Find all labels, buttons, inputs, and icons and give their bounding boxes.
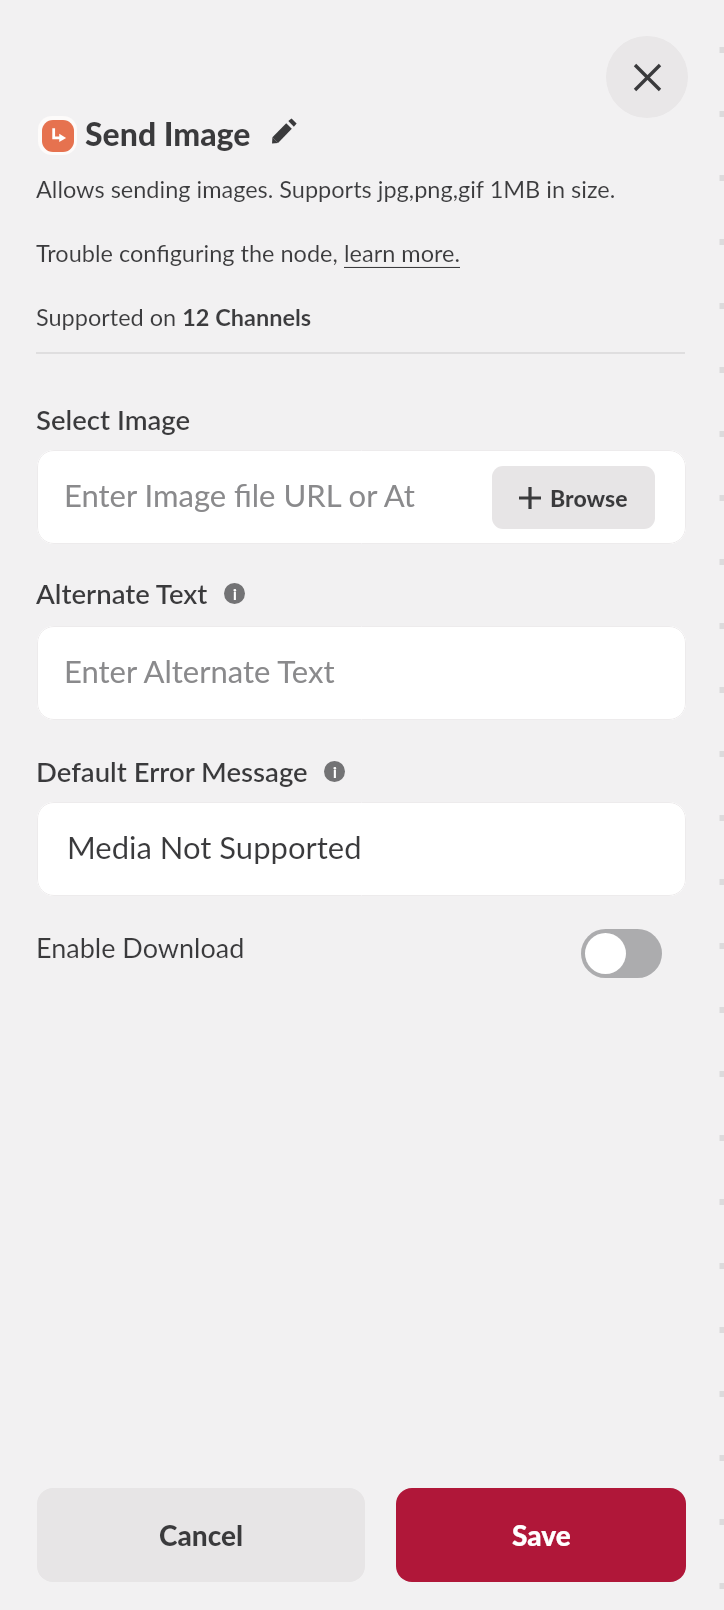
staticText: Default Error Message bbox=[36, 755, 308, 788]
staticText: Supported on 12 Channels bbox=[36, 303, 312, 331]
staticText: Save bbox=[512, 1518, 571, 1552]
staticText: Cancel bbox=[159, 1518, 244, 1552]
staticText: Browse bbox=[550, 484, 628, 512]
staticText: Send Image bbox=[85, 114, 251, 152]
staticText: Media Not Supported bbox=[67, 828, 362, 865]
button[interactable]: Enter Alternate Text bbox=[37, 626, 686, 720]
button[interactable]: Enter Image file URL or At bbox=[37, 450, 686, 544]
staticText: Enable Download bbox=[36, 931, 245, 963]
button[interactable]: Enable Download bbox=[581, 929, 662, 978]
button[interactable]: Close bbox=[606, 36, 688, 118]
staticText: Alternate Text bbox=[36, 577, 208, 610]
button[interactable]: Cancel bbox=[37, 1488, 365, 1582]
staticText: Select Image bbox=[36, 403, 191, 436]
staticText: Trouble configuring the node, bbox=[36, 239, 344, 267]
button[interactable]: learn more. bbox=[344, 239, 460, 267]
staticText: Enter Alternate Text bbox=[64, 652, 335, 689]
button[interactable]: Browse bbox=[492, 466, 655, 529]
staticText: Allows sending images. Supports jpg,png,… bbox=[36, 175, 616, 203]
staticText: i bbox=[333, 763, 337, 781]
button[interactable]: Media Not Supported bbox=[37, 802, 686, 896]
staticText: Enter Image file URL or At bbox=[64, 476, 415, 513]
button[interactable]: Rename bbox=[265, 112, 303, 150]
staticText: i bbox=[233, 585, 237, 603]
button[interactable]: Save bbox=[396, 1488, 686, 1582]
